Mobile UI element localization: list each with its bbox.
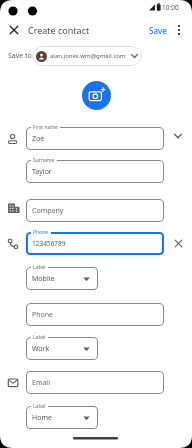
staticText: Phone <box>33 229 49 236</box>
button[interactable]: Company <box>26 199 164 222</box>
staticText: Create contact <box>28 24 90 36</box>
button[interactable]: Zoe <box>26 127 164 150</box>
button[interactable] <box>172 237 185 250</box>
staticText: Save to <box>8 51 32 61</box>
staticText: Zoe <box>32 134 45 144</box>
button[interactable]: Taylor <box>26 160 164 183</box>
staticText: Company <box>32 206 64 216</box>
staticText: Home <box>32 413 52 423</box>
staticText: alan.jones.wm@gmail.com <box>50 52 126 60</box>
button[interactable]: Work <box>26 337 98 360</box>
staticText: Taylor <box>32 167 52 177</box>
staticText: Work <box>32 344 50 354</box>
staticText: 123456789 <box>32 239 66 248</box>
button[interactable]: Save <box>149 24 167 36</box>
button[interactable]: Home <box>26 406 98 429</box>
staticText: Label <box>33 264 46 271</box>
button[interactable] <box>171 129 185 143</box>
button[interactable] <box>82 81 111 110</box>
staticText: 10:00 <box>162 3 179 12</box>
button[interactable] <box>7 23 21 37</box>
button[interactable]: Mobile <box>26 267 98 290</box>
staticText: First name <box>33 124 58 131</box>
staticText: Label <box>33 403 46 410</box>
staticText: Email <box>32 378 50 388</box>
staticText: Save <box>149 25 167 36</box>
button[interactable]: alan.jones.wm@gmail.com <box>32 46 142 66</box>
staticText: Surname <box>33 157 55 164</box>
staticText: Label <box>33 334 46 341</box>
button[interactable]: Phone <box>26 303 164 326</box>
staticText: Phone <box>32 310 54 320</box>
button[interactable] <box>173 23 185 37</box>
staticText: Mobile <box>32 274 55 284</box>
button[interactable]: Email <box>26 371 164 394</box>
button[interactable]: 123456789 <box>26 232 164 255</box>
